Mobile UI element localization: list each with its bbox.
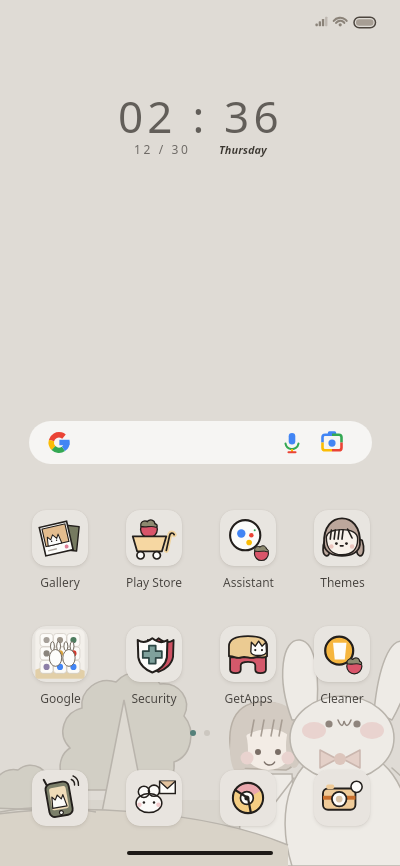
button[interactable]: Camera xyxy=(314,770,370,826)
button[interactable]: Messages xyxy=(126,770,182,826)
button[interactable]: Gallery xyxy=(23,510,97,590)
button[interactable]: Play Store xyxy=(117,510,191,590)
staticText: Themes xyxy=(320,574,365,590)
staticText: Security xyxy=(131,690,177,706)
staticText: 12 / 30 xyxy=(134,141,191,157)
staticText: Thursday xyxy=(219,142,267,157)
staticText: Cleaner xyxy=(320,690,364,706)
button[interactable]: Cleaner xyxy=(305,626,379,706)
button[interactable]: Google search xyxy=(29,421,372,464)
staticText: 02 : 36 xyxy=(118,86,283,146)
staticText: Assistant xyxy=(223,574,274,590)
staticText: Gallery xyxy=(40,574,80,590)
button[interactable]: Chrome xyxy=(220,770,276,826)
staticText: GetApps xyxy=(224,690,273,706)
button[interactable]: Security xyxy=(117,626,191,706)
staticText: Google xyxy=(40,690,81,706)
staticText: Play Store xyxy=(126,574,182,590)
button[interactable]: Themes xyxy=(305,510,379,590)
button[interactable]: Phone xyxy=(32,770,88,826)
button[interactable]: Assistant xyxy=(211,510,285,590)
button[interactable]: Google xyxy=(23,626,97,706)
button[interactable]: GetApps xyxy=(211,626,285,706)
